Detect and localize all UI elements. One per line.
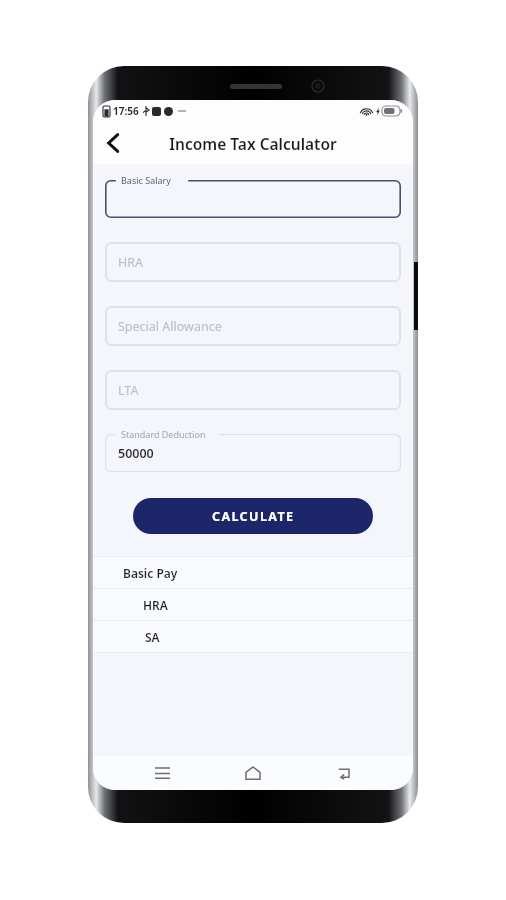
button[interactable]: SA: [93, 621, 413, 652]
button[interactable]: Home: [231, 756, 275, 790]
button[interactable]: Back: [322, 756, 366, 790]
button[interactable]: HRA: [105, 242, 401, 282]
button[interactable]: Back: [93, 123, 133, 163]
staticText: Standard Deduction: [121, 428, 206, 440]
button[interactable]: Recent apps: [140, 756, 184, 790]
button[interactable]: Special Allowance: [105, 306, 401, 346]
staticText: CALCULATE: [212, 508, 295, 525]
staticText: Special Allowance: [118, 318, 222, 335]
staticText: Basic Salary: [121, 174, 171, 186]
button[interactable]: Basic Pay: [93, 557, 413, 588]
staticText: SA: [145, 629, 160, 645]
button[interactable]: HRA: [93, 589, 413, 620]
staticText: LTA: [118, 382, 139, 399]
staticText: Basic Pay: [123, 565, 178, 581]
button[interactable]: CALCULATE: [133, 498, 373, 534]
button[interactable]: Basic Salary: [105, 180, 401, 218]
staticText: HRA: [118, 254, 144, 271]
staticText: 17:56: [113, 104, 139, 118]
button[interactable]: LTA: [105, 370, 401, 410]
staticText: 50000: [118, 445, 154, 462]
staticText: HRA: [143, 597, 168, 613]
staticText: Income Tax Calculator: [169, 133, 337, 154]
button[interactable]: Standard Deduction: [105, 434, 401, 472]
